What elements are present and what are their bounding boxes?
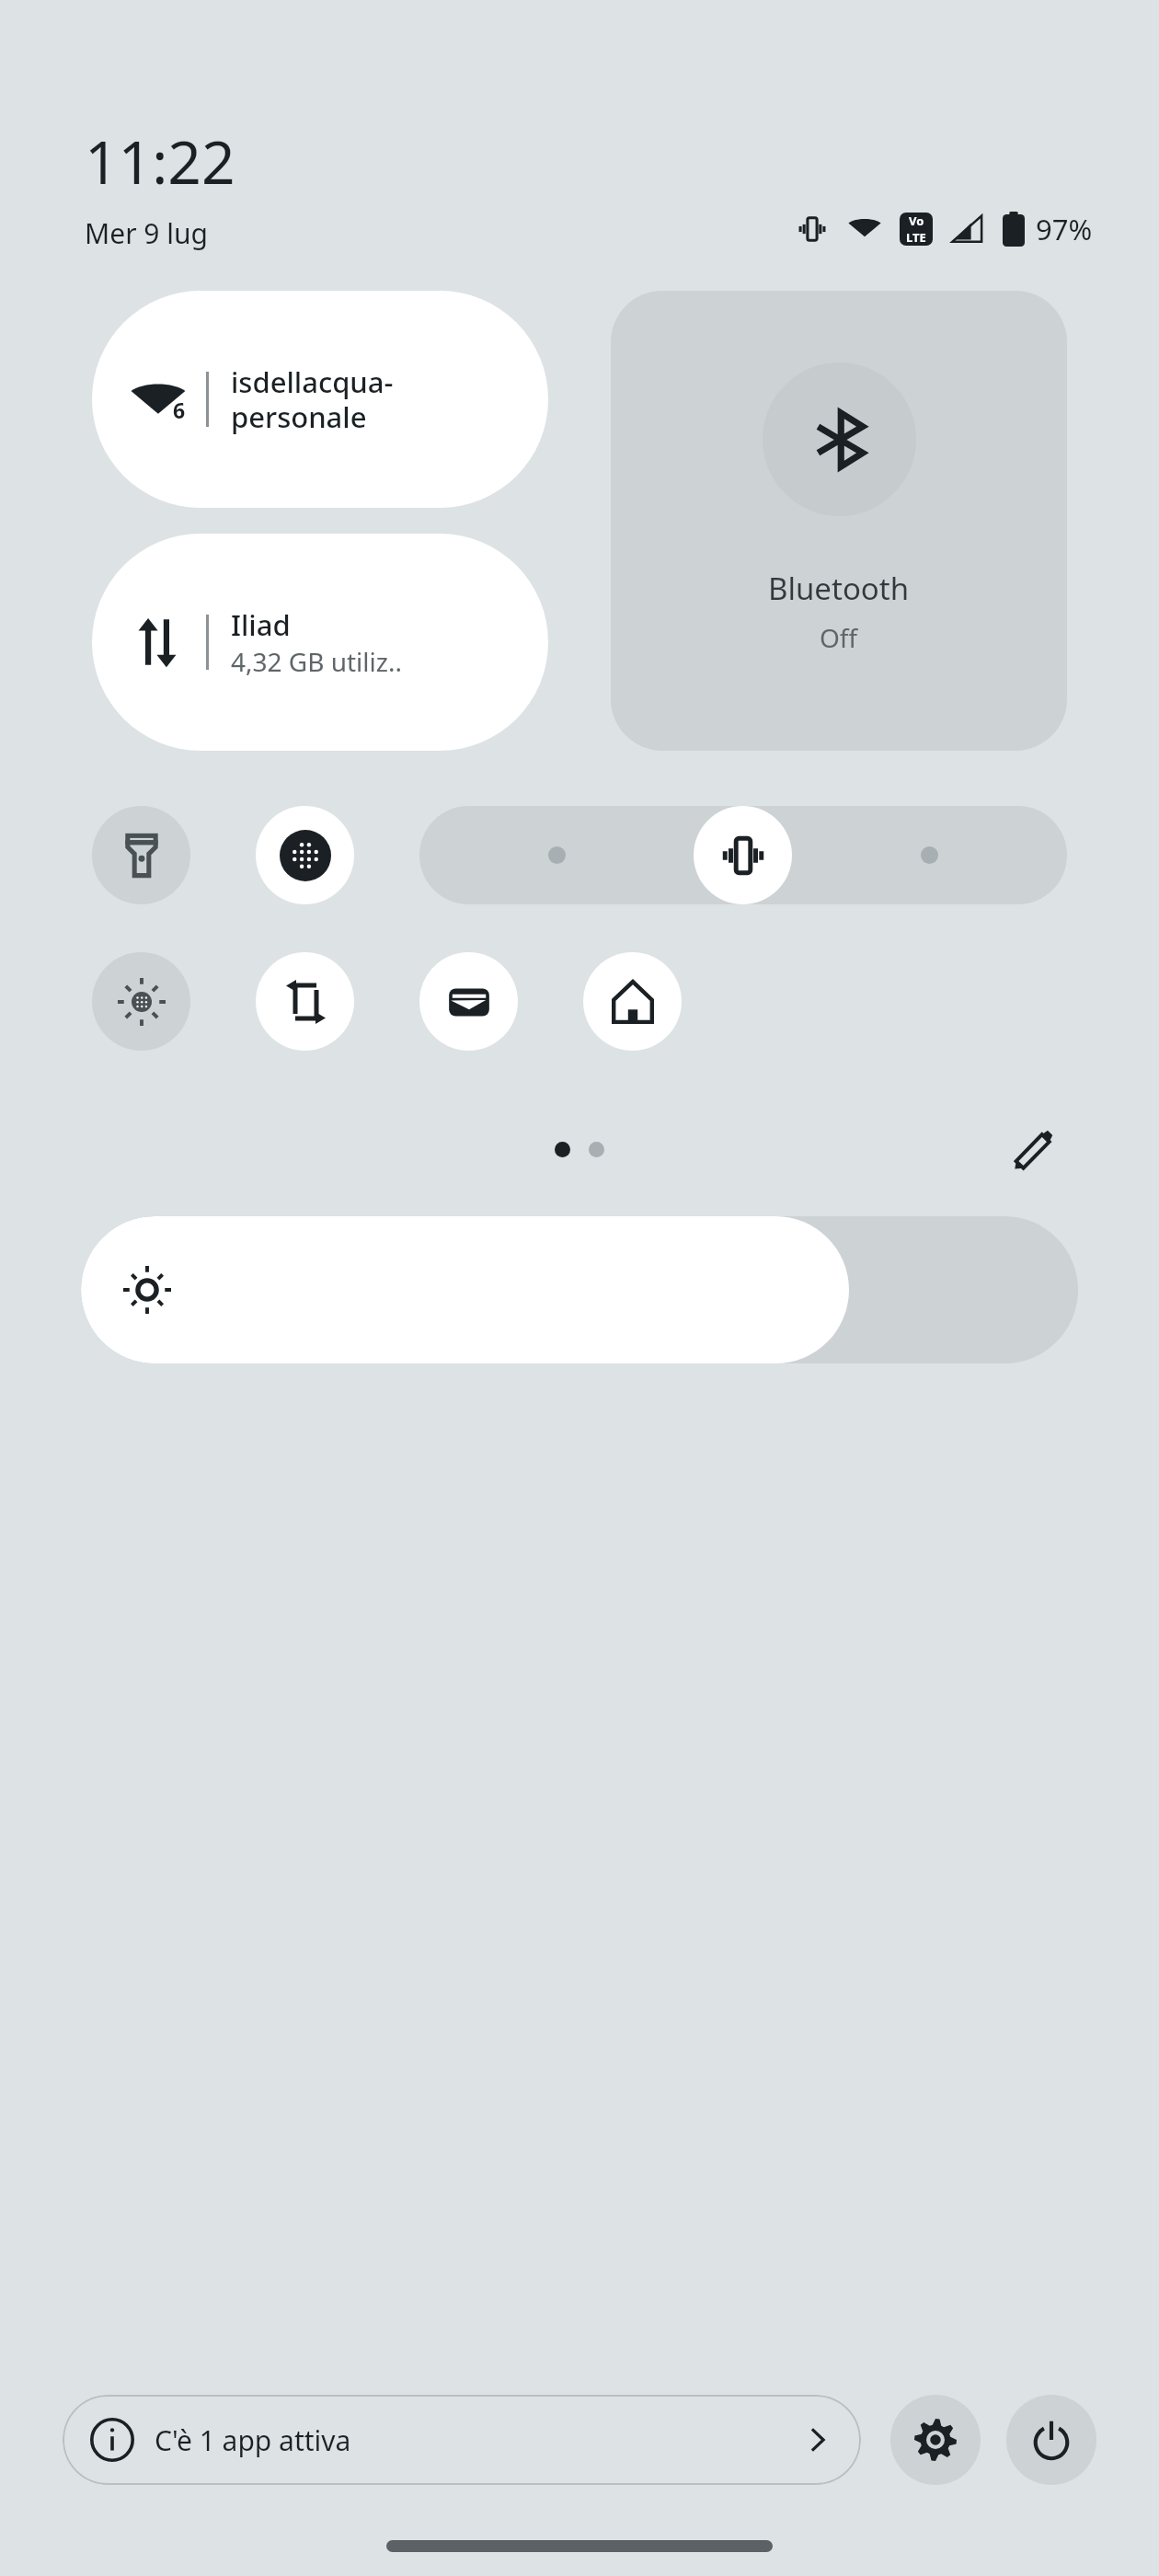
button[interactable]: Brightness bbox=[81, 1216, 1078, 1363]
staticText: isdellacqua- personale bbox=[231, 362, 394, 436]
button[interactable]: Flashlight bbox=[92, 806, 190, 904]
staticText: 11:22 bbox=[85, 121, 235, 201]
button[interactable]: Ringer mode: vibrate bbox=[419, 806, 1067, 904]
staticText: C'è 1 app attiva bbox=[155, 2421, 802, 2459]
staticText: 6 bbox=[173, 396, 186, 424]
button[interactable]: Wallet bbox=[419, 952, 518, 1051]
staticText: Bluetooth bbox=[768, 568, 910, 609]
button[interactable]: 6 bbox=[92, 291, 548, 508]
button[interactable]: Power bbox=[1006, 2395, 1096, 2485]
button[interactable]: C'è 1 app attiva bbox=[63, 2395, 861, 2485]
button[interactable]: Settings bbox=[890, 2395, 981, 2485]
button[interactable]: Edit tiles bbox=[1001, 1117, 1067, 1181]
staticText: 4,32 GB utiliz.. bbox=[231, 644, 402, 679]
button[interactable]: Home bbox=[583, 952, 682, 1051]
staticText: Mer 9 lug bbox=[85, 214, 209, 252]
staticText: Off bbox=[820, 620, 858, 655]
staticText: 97% bbox=[1036, 210, 1093, 248]
button[interactable]: Auto rotate bbox=[256, 952, 354, 1051]
button[interactable]: Iliad bbox=[92, 534, 548, 751]
button[interactable]: Auto brightness bbox=[92, 952, 190, 1051]
staticText: Vo bbox=[909, 213, 924, 229]
button[interactable]: Bluetooth bbox=[611, 291, 1067, 751]
button[interactable]: Do not disturb bbox=[256, 806, 354, 904]
staticText: LTE bbox=[906, 229, 926, 246]
staticText: Iliad bbox=[231, 605, 291, 644]
